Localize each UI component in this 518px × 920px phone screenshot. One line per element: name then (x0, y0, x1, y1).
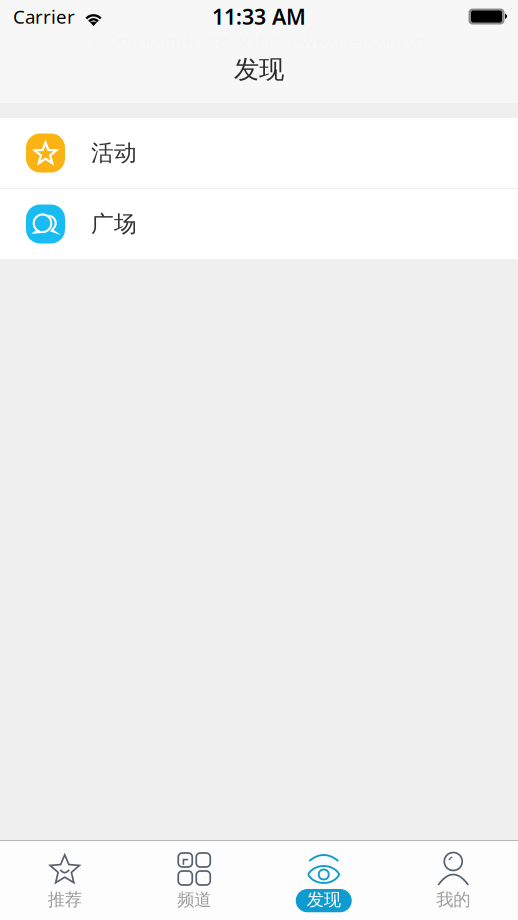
staticText: 广场 (91, 210, 137, 238)
button[interactable]: 活动 (0, 118, 518, 188)
button[interactable]: 频道 (129, 841, 259, 920)
button[interactable]: 推荐 (0, 841, 129, 920)
button[interactable]: 广场 (0, 189, 518, 259)
staticText: 发现 (307, 889, 341, 910)
staticText: 活动 (91, 139, 137, 167)
staticText: 推荐 (48, 889, 82, 910)
staticText: 频道 (177, 889, 211, 910)
button[interactable]: 我的 (388, 841, 518, 920)
staticText: 11:33 AM (212, 2, 306, 31)
staticText: 发现 (234, 54, 284, 85)
staticText: Carrier (13, 4, 75, 29)
button[interactable]: 发现 (259, 841, 388, 920)
staticText: 我的 (436, 889, 470, 910)
